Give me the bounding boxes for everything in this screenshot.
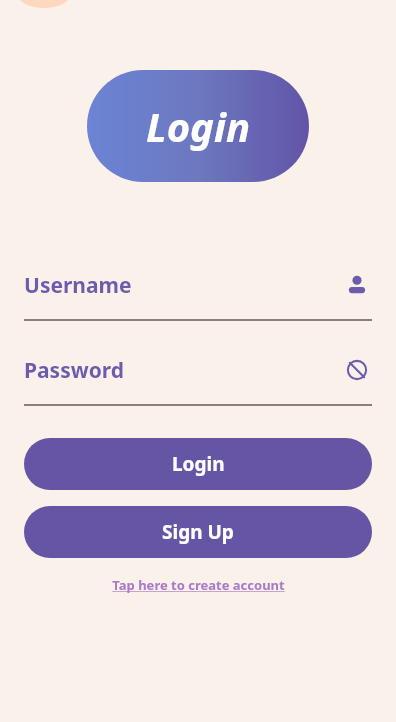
staticText: Login — [172, 451, 225, 477]
button[interactable]: Sign Up — [24, 506, 372, 558]
button[interactable]: Login — [87, 70, 309, 182]
staticText: Tap here to create account — [112, 576, 285, 594]
button[interactable]: Username — [342, 270, 372, 300]
staticText: Username — [24, 271, 342, 300]
button[interactable]: Tap here to create account — [106, 574, 291, 596]
button[interactable]: Login — [24, 438, 372, 490]
staticText: Login — [146, 99, 251, 153]
staticText: Sign Up — [162, 519, 234, 545]
staticText: Password — [24, 356, 342, 385]
button[interactable]: Show password — [342, 355, 372, 385]
